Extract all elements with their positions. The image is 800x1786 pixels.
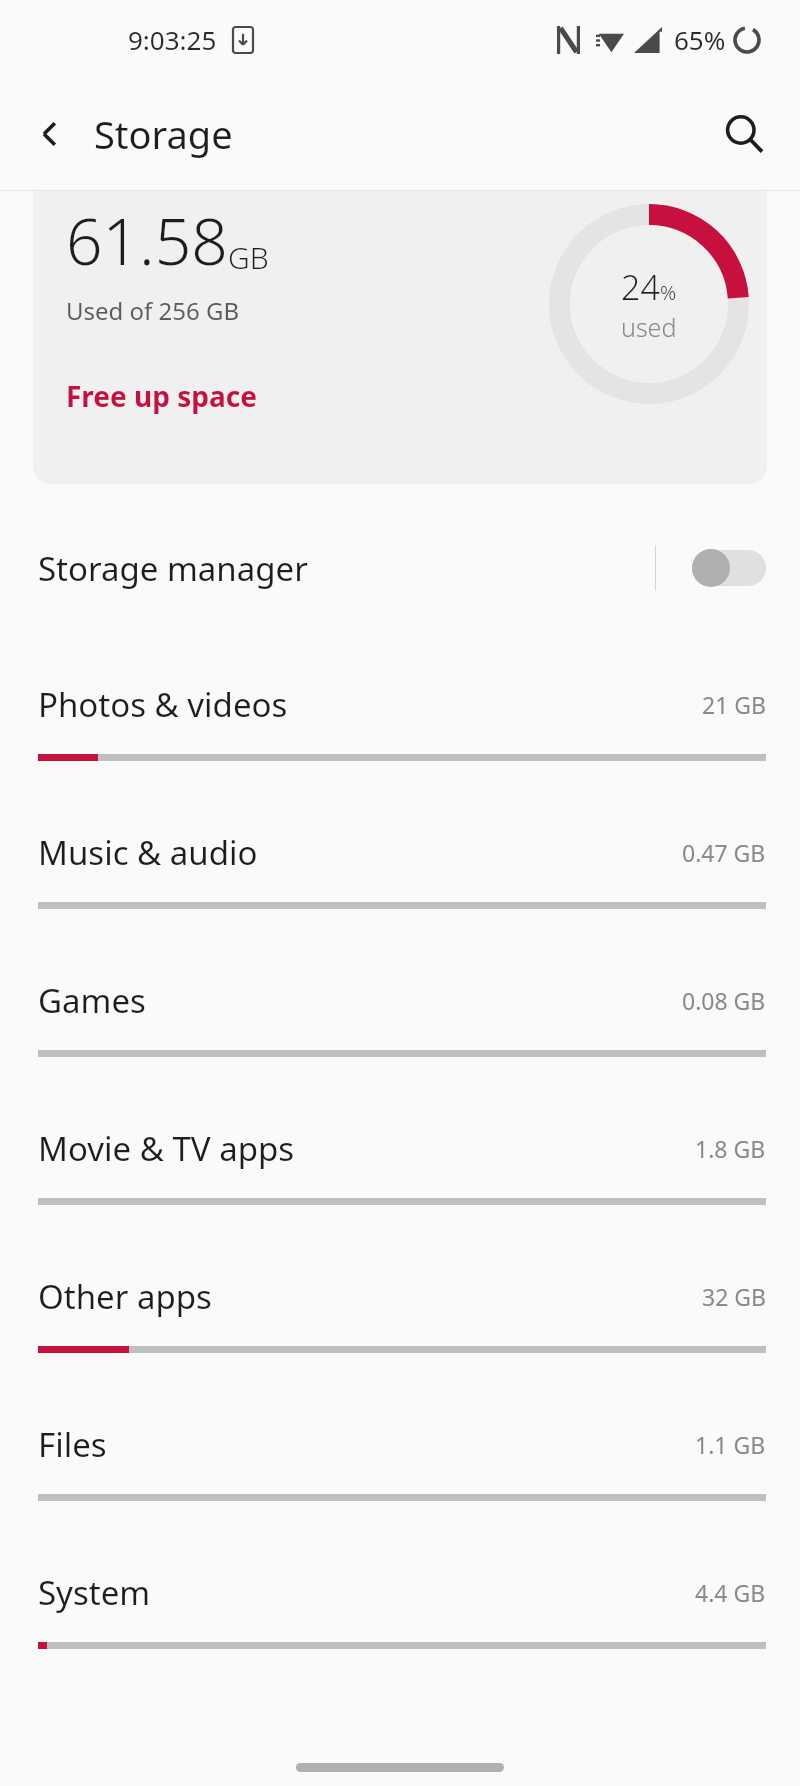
staticText: 9:03:25 <box>128 22 217 57</box>
button[interactable]: Files <box>0 1408 800 1556</box>
staticText: 1.8 GB <box>695 1133 766 1164</box>
staticText: 65% <box>674 22 726 57</box>
staticText: GB <box>228 237 269 278</box>
button[interactable]: Free up space <box>66 377 257 415</box>
staticText: 21 GB <box>702 689 766 720</box>
staticText: % <box>660 279 677 306</box>
staticText: 61.58 <box>66 197 228 284</box>
button[interactable]: Storage manager toggle <box>692 548 766 588</box>
staticText: Photos & videos <box>38 682 702 727</box>
button[interactable]: Other apps <box>0 1260 800 1408</box>
staticText: Movie & TV apps <box>38 1126 695 1171</box>
button[interactable]: Photos & videos <box>0 668 800 816</box>
button[interactable]: System <box>0 1556 800 1704</box>
button[interactable]: Search <box>710 100 778 168</box>
staticText: System <box>38 1570 695 1615</box>
button[interactable]: Storage manager <box>0 520 800 616</box>
staticText: 24 <box>621 264 660 310</box>
staticText: 4.4 GB <box>695 1577 766 1608</box>
staticText: used <box>621 310 677 344</box>
button[interactable]: Back <box>20 104 80 164</box>
staticText: Games <box>38 978 682 1023</box>
staticText: Storage manager <box>38 546 655 591</box>
staticText: Other apps <box>38 1274 702 1319</box>
staticText: Music & audio <box>38 830 682 875</box>
button[interactable]: Music & audio <box>0 816 800 964</box>
staticText: 1.1 GB <box>695 1429 766 1460</box>
button[interactable]: Games <box>0 964 800 1112</box>
staticText: Files <box>38 1422 695 1467</box>
staticText: 32 GB <box>702 1281 766 1312</box>
staticText: Storage <box>94 108 233 160</box>
staticText: Used of 256 GB <box>66 294 240 327</box>
staticText: 0.47 GB <box>682 837 766 868</box>
button[interactable]: 61.58 <box>33 191 767 484</box>
button[interactable]: Movie & TV apps <box>0 1112 800 1260</box>
staticText: 0.08 GB <box>682 985 766 1016</box>
